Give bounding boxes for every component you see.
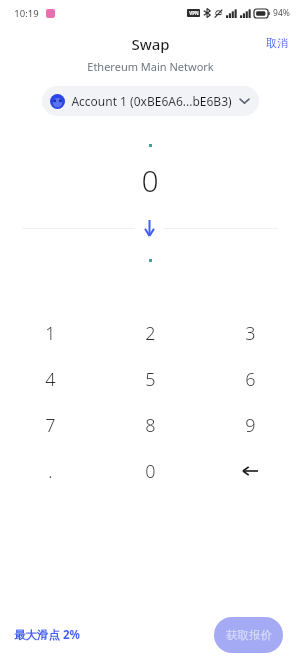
button[interactable]: 取消 — [260, 32, 294, 54]
button[interactable]: 2 — [100, 310, 200, 356]
button[interactable]: 获取报价 — [214, 617, 283, 653]
button[interactable]: . — [0, 448, 100, 494]
button[interactable]: 3 — [200, 310, 300, 356]
staticText: VPN — [189, 10, 199, 16]
staticText: Account 1 (0xBE6A6...bE6B3) — [71, 93, 232, 109]
button[interactable]: 8 — [100, 402, 200, 448]
staticText: 5 — [145, 367, 156, 392]
staticText: 94% — [273, 7, 290, 19]
staticText: Swap — [131, 34, 170, 54]
staticText: 获取报价 — [226, 628, 272, 642]
staticText: Ethereum Main Network — [87, 59, 214, 74]
staticText: 0 — [141, 160, 159, 201]
button[interactable]: 9 — [200, 402, 300, 448]
button[interactable]: Backspace — [200, 448, 300, 494]
staticText: 最大滑点 2% — [14, 627, 80, 643]
staticText: 10:19 — [14, 7, 39, 20]
button[interactable]: 最大滑点 2% — [8, 623, 86, 647]
button[interactable]: 0 — [100, 448, 200, 494]
staticText: 4 — [45, 367, 56, 392]
staticText: 1 — [45, 321, 56, 346]
staticText: 取消 — [266, 36, 288, 50]
button[interactable]: 7 — [0, 402, 100, 448]
button[interactable]: 4 — [0, 356, 100, 402]
button[interactable]: 6 — [200, 356, 300, 402]
staticText: 8 — [145, 413, 156, 438]
staticText: 9 — [245, 413, 256, 438]
button[interactable]: 1 — [0, 310, 100, 356]
staticText: 0 — [145, 459, 156, 484]
staticText: 3 — [245, 321, 256, 346]
staticText: 7 — [45, 413, 56, 438]
button[interactable]: 5 — [100, 356, 200, 402]
staticText: 2 — [145, 321, 156, 346]
button[interactable]: Account 1 (0xBE6A6...bE6B3) — [42, 86, 259, 116]
staticText: . — [48, 459, 53, 484]
staticText: 6 — [245, 367, 256, 392]
